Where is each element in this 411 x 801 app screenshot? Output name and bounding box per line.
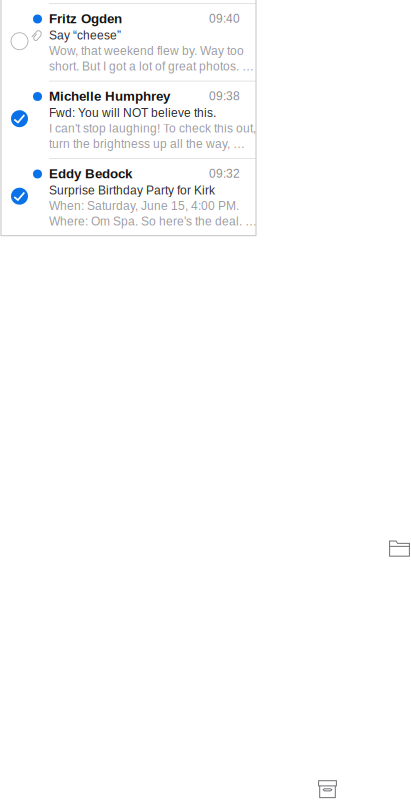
button[interactable]: Fritz Ogden <box>1 4 256 81</box>
staticText: Where: Om Spa. So here's the deal. … <box>49 215 257 228</box>
staticText: 09:40 <box>209 12 240 25</box>
button[interactable]: Move to folder <box>389 539 410 557</box>
staticText: I can't stop laughing! To check this out… <box>49 122 256 135</box>
staticText: Fwd: You will NOT believe this. <box>49 106 216 119</box>
staticText: Surprise Birthday Party for Kirk <box>49 184 215 197</box>
staticText: 09:38 <box>209 89 240 103</box>
staticText: Michelle Humphrey <box>49 89 170 104</box>
button[interactable]: Eddy Bedock <box>1 159 256 236</box>
staticText: Say “cheese” <box>49 29 121 42</box>
staticText: Fritz Ogden <box>49 11 122 26</box>
staticText: Eddy Bedock <box>49 166 132 181</box>
staticText: Wow, that weekend flew by. Way too <box>49 44 244 58</box>
button[interactable]: Archive <box>318 780 337 798</box>
staticText: short. But I got a lot of great photos. … <box>49 60 254 73</box>
staticText: When: Saturday, June 15, 4:00 PM. <box>49 199 239 213</box>
staticText: 09:32 <box>209 167 240 180</box>
button[interactable]: Michelle Humphrey <box>1 82 256 158</box>
staticText: turn the brightness up all the way, … <box>49 137 245 151</box>
